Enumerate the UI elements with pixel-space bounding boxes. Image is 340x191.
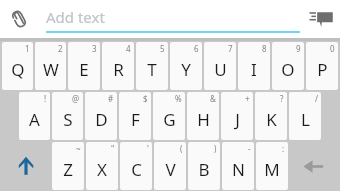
staticText: Y xyxy=(181,58,191,81)
button[interactable]: $ xyxy=(119,92,151,140)
staticText: B xyxy=(198,158,210,181)
staticText: X xyxy=(97,158,107,181)
staticText: E xyxy=(79,58,89,81)
staticText: % xyxy=(175,93,182,104)
staticText: N xyxy=(232,158,245,181)
staticText: $ xyxy=(143,93,148,104)
button[interactable]: 5 xyxy=(136,42,168,90)
staticText: ! xyxy=(44,93,47,104)
staticText: 8 xyxy=(262,43,267,54)
button[interactable]: ) xyxy=(188,142,220,190)
staticText: + xyxy=(245,93,250,104)
button[interactable]: ! xyxy=(19,92,50,140)
button[interactable]: 2 xyxy=(35,42,66,90)
staticText: - xyxy=(248,143,251,154)
staticText: H xyxy=(197,108,210,131)
staticText: 3 xyxy=(92,43,97,54)
button[interactable]: " xyxy=(86,142,118,190)
button[interactable]: 4 xyxy=(102,42,134,90)
staticText: @ xyxy=(72,93,80,104)
staticText: D xyxy=(95,108,108,131)
staticText: ' xyxy=(147,143,149,154)
button[interactable]: # xyxy=(85,92,117,140)
staticText: ~ xyxy=(76,143,81,154)
staticText: # xyxy=(108,93,114,104)
button[interactable]: Attach file xyxy=(4,4,34,34)
staticText: L xyxy=(301,108,310,131)
staticText: P xyxy=(317,58,328,81)
staticText: 2 xyxy=(58,43,63,54)
staticText: R xyxy=(113,58,124,81)
staticText: ? xyxy=(280,93,284,104)
staticText: ) xyxy=(214,143,217,154)
staticText: 1 xyxy=(25,43,30,54)
staticText: W xyxy=(43,58,59,81)
staticText: O xyxy=(281,58,295,81)
staticText: & xyxy=(210,93,216,104)
button[interactable]: ~ xyxy=(52,142,84,190)
staticText: M xyxy=(264,158,280,181)
staticText: U xyxy=(214,58,227,81)
button[interactable]: 3 xyxy=(68,42,100,90)
button[interactable]: - xyxy=(222,142,254,190)
staticText: A xyxy=(29,108,40,131)
button[interactable]: & xyxy=(187,92,219,140)
button[interactable]: Send xyxy=(304,2,338,36)
staticText: Z xyxy=(63,158,73,181)
button[interactable]: 1 xyxy=(2,42,33,90)
staticText: " xyxy=(111,143,115,154)
staticText: 0 xyxy=(330,43,335,54)
button[interactable]: + xyxy=(221,92,253,140)
staticText: 6 xyxy=(194,43,199,54)
button[interactable]: 7 xyxy=(204,42,236,90)
staticText: V xyxy=(165,158,176,181)
button[interactable]: / xyxy=(289,92,321,140)
staticText: 5 xyxy=(160,43,165,54)
button[interactable]: % xyxy=(153,92,185,140)
staticText: I xyxy=(251,58,257,81)
button[interactable]: 6 xyxy=(170,42,202,90)
staticText: K xyxy=(266,108,277,131)
staticText: G xyxy=(163,108,176,131)
button[interactable]: 0 xyxy=(306,42,338,90)
button[interactable]: ? xyxy=(255,92,287,140)
staticText: C xyxy=(131,158,142,181)
staticText: Add text xyxy=(46,7,105,27)
button[interactable]: Backspace xyxy=(289,142,339,190)
staticText: T xyxy=(147,58,157,81)
staticText: 9 xyxy=(296,43,301,54)
staticText: S xyxy=(63,108,73,131)
button[interactable]: Shift xyxy=(1,142,51,190)
staticText: F xyxy=(131,108,140,131)
button[interactable]: 8 xyxy=(238,42,270,90)
staticText: 4 xyxy=(126,43,131,54)
button[interactable]: ' xyxy=(120,142,152,190)
staticText: : xyxy=(282,143,285,154)
button[interactable]: : xyxy=(256,142,288,190)
button[interactable]: @ xyxy=(52,92,83,140)
staticText: J xyxy=(235,108,240,131)
staticText: Q xyxy=(11,58,25,81)
staticText: ( xyxy=(180,143,183,154)
staticText: 7 xyxy=(228,43,233,54)
button[interactable]: ( xyxy=(154,142,186,190)
staticText: / xyxy=(315,93,318,104)
button[interactable]: 9 xyxy=(272,42,304,90)
